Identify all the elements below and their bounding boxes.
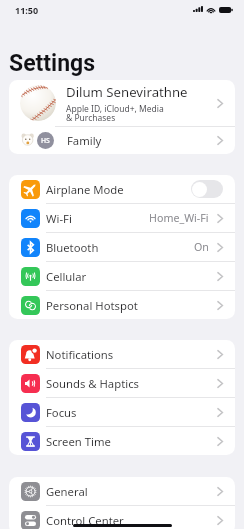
staticText: Screen Time: [46, 434, 217, 449]
button[interactable]: Cellular: [9, 262, 235, 290]
staticText: HS: [41, 136, 50, 145]
button[interactable]: General: [9, 477, 235, 505]
staticText: Family: [67, 133, 217, 148]
button[interactable]: Notifications: [9, 340, 235, 368]
button[interactable]: Bluetooth: [9, 233, 235, 261]
staticText: Home_Wi-Fi: [149, 211, 209, 226]
staticText: Notifications: [46, 347, 217, 362]
staticText: 11:50: [15, 4, 39, 16]
button[interactable]: Personal Hotspot: [9, 291, 235, 319]
button[interactable]: Wi-Fi: [9, 204, 235, 232]
staticText: Control Center: [46, 513, 217, 528]
staticText: Wi-Fi: [46, 211, 149, 226]
staticText: Dilum Senevirathne: [66, 83, 188, 101]
staticText: Focus: [46, 405, 217, 420]
staticText: Airplane Mode: [46, 182, 191, 197]
staticText: Apple ID, iCloud+, Media & Purchases: [66, 103, 164, 124]
button[interactable]: Control Center: [9, 506, 235, 529]
staticText: Cellular: [46, 269, 217, 284]
button[interactable]: Focus: [9, 398, 235, 426]
staticText: Personal Hotspot: [46, 298, 217, 313]
button[interactable]: HS: [9, 127, 235, 154]
staticText: General: [46, 484, 217, 499]
staticText: On: [194, 240, 209, 255]
button[interactable]: Dilum Senevirathne: [9, 80, 235, 126]
staticText: Sounds & Haptics: [46, 376, 217, 391]
button[interactable]: Sounds & Haptics: [9, 369, 235, 397]
staticText: Settings: [9, 50, 96, 77]
button[interactable]: Airplane Mode: [9, 175, 235, 203]
staticText: Bluetooth: [46, 240, 194, 255]
button[interactable]: Screen Time: [9, 427, 235, 455]
